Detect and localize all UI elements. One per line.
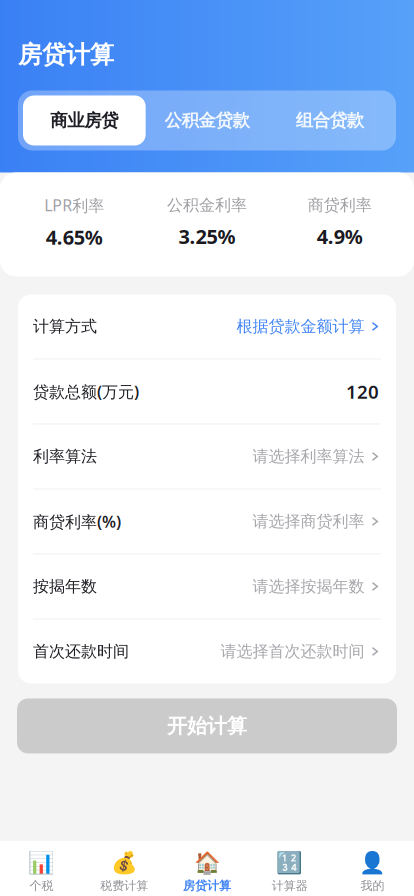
staticText: 商贷利率 <box>308 195 372 215</box>
staticText: 4.65% <box>46 224 103 250</box>
staticText: 个税 <box>29 878 53 893</box>
button[interactable]: 利率算法 <box>18 424 396 488</box>
button[interactable]: 组合贷款 <box>268 95 391 145</box>
button[interactable]: 商业房贷 <box>23 95 146 145</box>
button[interactable]: 计算方式 <box>18 294 396 358</box>
staticText: 3.25% <box>178 223 235 250</box>
staticText: 税费计算 <box>100 878 148 893</box>
button[interactable]: 商贷利率(%) <box>18 489 396 553</box>
button[interactable]: 按揭年数 <box>18 554 396 618</box>
staticText: 首次还款时间 <box>33 642 129 661</box>
button[interactable]: 🔢 <box>248 841 331 896</box>
button[interactable]: 开始计算 <box>17 698 397 753</box>
button[interactable]: 💰 <box>83 841 166 896</box>
button[interactable]: 🏠 <box>166 841 248 896</box>
staticText: 🔢 <box>276 851 303 875</box>
staticText: 👤 <box>359 851 386 875</box>
staticText: 公积金利率 <box>167 195 247 215</box>
staticText: 开始计算 <box>167 714 247 738</box>
staticText: 💰 <box>111 851 138 875</box>
staticText: 商业房贷 <box>50 110 118 131</box>
staticText: 计算方式 <box>33 317 97 336</box>
button[interactable]: 贷款总额(万元) <box>18 359 396 423</box>
staticText: 房贷计算 <box>183 878 231 893</box>
staticText: 4.9% <box>317 223 363 250</box>
staticText: 120 <box>346 379 379 404</box>
staticText: 根据贷款金额计算 <box>236 317 364 336</box>
staticText: 请选择按揭年数 <box>252 577 364 596</box>
button[interactable]: 公积金贷款 <box>146 95 268 145</box>
staticText: 商贷利率(%) <box>33 511 121 532</box>
staticText: 🏠 <box>193 851 220 875</box>
staticText: 按揭年数 <box>33 577 97 596</box>
staticText: 📊 <box>28 851 55 875</box>
staticText: 房贷计算 <box>18 40 114 69</box>
staticText: 公积金贷款 <box>164 110 249 131</box>
staticText: 组合贷款 <box>296 110 364 131</box>
button[interactable]: 📊 <box>0 841 83 896</box>
staticText: 请选择商贷利率 <box>252 512 364 531</box>
button[interactable]: 👤 <box>331 841 414 896</box>
staticText: 我的 <box>361 878 385 893</box>
staticText: 利率算法 <box>33 447 97 466</box>
staticText: 请选择首次还款时间 <box>220 642 364 661</box>
staticText: 请选择利率算法 <box>252 447 364 466</box>
staticText: LPR利率 <box>44 194 104 216</box>
button[interactable]: 首次还款时间 <box>18 619 396 683</box>
staticText: 贷款总额(万元) <box>33 381 139 402</box>
staticText: 计算器 <box>272 878 308 893</box>
